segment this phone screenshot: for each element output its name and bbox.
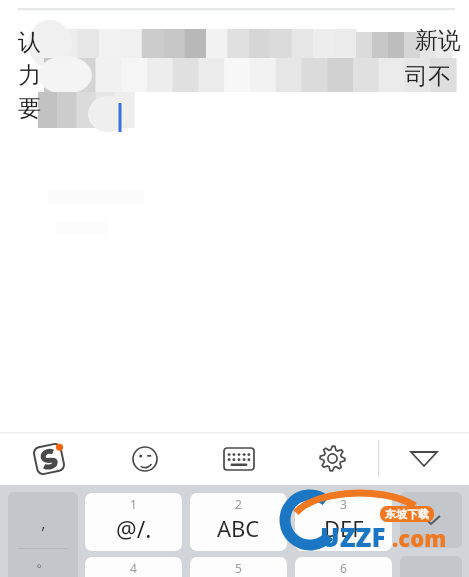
staticText: 。 (36, 552, 51, 571)
button[interactable]: 5 (190, 557, 287, 577)
staticText: 6 (340, 560, 347, 576)
button[interactable]: Sogou input method (0, 432, 98, 485)
button[interactable]: Hide keyboard (378, 432, 469, 485)
button[interactable]: 2 (190, 493, 287, 551)
button[interactable]: 3 (295, 493, 392, 551)
button[interactable]: 4 (85, 557, 182, 577)
staticText: DEF (324, 513, 364, 543)
button[interactable]: Collapse (400, 492, 462, 548)
staticText: 司不 (405, 62, 451, 91)
staticText: UZZF (320, 519, 386, 554)
staticText: 新说 (415, 26, 461, 55)
staticText: ABC (217, 513, 260, 543)
button[interactable]: 6 (295, 557, 392, 577)
staticText: .com (392, 523, 447, 553)
button[interactable]: 1 (85, 493, 182, 551)
staticText: 2 (235, 496, 242, 512)
button[interactable]: Switch keyboard (192, 432, 286, 485)
staticText: , (41, 512, 46, 534)
staticText: 要 (18, 94, 41, 123)
button[interactable]: Settings (286, 432, 378, 485)
staticText: 认 (18, 28, 41, 57)
staticText: 力 (18, 61, 41, 90)
staticText: 东坡下载 (385, 507, 429, 521)
staticText: 4 (130, 560, 137, 576)
staticText: 1 (130, 496, 137, 512)
staticText: 5 (235, 560, 242, 576)
staticText: 3 (340, 496, 347, 512)
button[interactable]: Emoji (98, 432, 192, 485)
button[interactable]: , (8, 492, 78, 577)
staticText: @/. (116, 513, 152, 544)
